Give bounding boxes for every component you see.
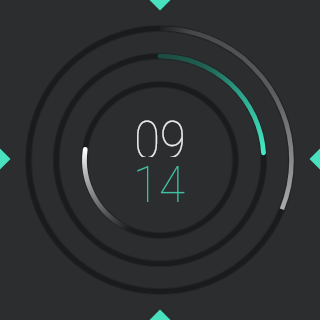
button[interactable]: 09 xyxy=(100,115,220,207)
staticText: 14 xyxy=(133,156,185,202)
staticText: 09 xyxy=(134,111,186,157)
